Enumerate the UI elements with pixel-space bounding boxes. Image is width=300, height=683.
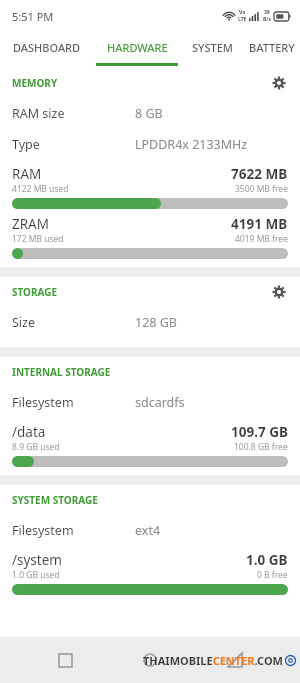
staticText: 4019 MB free xyxy=(235,233,288,245)
staticText: STORAGE xyxy=(12,285,58,299)
staticText: LTE xyxy=(238,16,247,23)
staticText: /data xyxy=(12,423,46,441)
staticText: 109.7 GB xyxy=(231,423,288,441)
button[interactable]: /data xyxy=(0,423,300,467)
staticText: B/s xyxy=(263,16,271,23)
button[interactable]: DASHBOARD xyxy=(0,32,93,68)
button[interactable]: Size xyxy=(0,307,300,338)
staticText: Vo xyxy=(239,9,246,16)
staticText: INTERNAL STORAGE xyxy=(12,365,111,379)
staticText: RAM size xyxy=(12,105,65,122)
staticText: /system xyxy=(12,551,62,569)
button[interactable]: Settings xyxy=(266,70,292,96)
staticText: SYSTEM xyxy=(192,40,233,55)
staticText: Filesystem xyxy=(12,522,74,539)
staticText: 5:51 PM xyxy=(12,9,54,24)
staticText: 39 xyxy=(264,9,270,16)
button[interactable]: Settings xyxy=(266,279,292,305)
staticText: ext4 xyxy=(135,522,161,539)
staticText: MEMORY xyxy=(12,76,58,90)
staticText: 172 MB used xyxy=(12,233,64,245)
button[interactable]: ZRAM xyxy=(0,215,300,259)
staticText: Size xyxy=(12,314,36,331)
button[interactable]: RAM xyxy=(0,165,300,209)
button[interactable]: SYSTEM xyxy=(181,32,243,68)
staticText: Type xyxy=(12,136,40,153)
staticText: 4122 MB used xyxy=(12,183,69,195)
button[interactable]: Filesystem xyxy=(0,515,300,546)
button[interactable]: /system xyxy=(0,551,300,595)
button[interactable]: Back xyxy=(215,640,255,680)
staticText: BATTERY xyxy=(249,40,295,55)
staticText: 8.9 GB used xyxy=(12,441,60,453)
staticText: THAIMOBILECENTER.COM xyxy=(143,653,283,668)
button[interactable]: Home xyxy=(130,640,170,680)
button[interactable]: HARDWARE xyxy=(93,32,181,68)
staticText: 100.8 GB free xyxy=(234,441,288,453)
button[interactable]: Filesystem xyxy=(0,387,300,418)
staticText: DASHBOARD xyxy=(13,40,81,55)
staticText: 3500 MB free xyxy=(235,183,288,195)
staticText: Filesystem xyxy=(12,394,74,411)
staticText: 8 GB xyxy=(135,105,163,122)
button[interactable]: BATTERY xyxy=(243,32,300,68)
staticText: HARDWARE xyxy=(107,40,168,55)
staticText: 0 B free xyxy=(257,569,288,581)
button[interactable]: RAM size xyxy=(0,98,300,129)
staticText: sdcardfs xyxy=(135,394,185,411)
button[interactable]: Type xyxy=(0,129,300,160)
staticText: LPDDR4x 2133MHz xyxy=(135,136,248,153)
staticText: 7622 MB xyxy=(231,165,288,183)
staticText: RAM xyxy=(12,165,42,183)
staticText: SYSTEM STORAGE xyxy=(12,493,98,507)
staticText: 4191 MB xyxy=(231,215,288,233)
staticText: 1.0 GB xyxy=(246,551,288,569)
button[interactable]: Recent apps xyxy=(45,640,85,680)
staticText: 1.0 GB used xyxy=(12,569,60,581)
staticText: 128 GB xyxy=(135,314,177,331)
staticText: ZRAM xyxy=(12,215,49,233)
